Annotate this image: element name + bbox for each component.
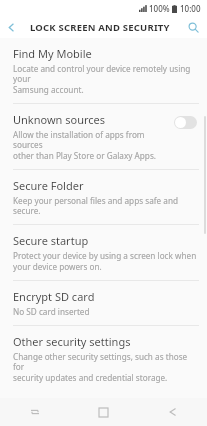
button[interactable]: Recent apps: [0, 398, 69, 426]
staticText: security updates and credential storage.: [13, 372, 168, 383]
button[interactable]: Unknown sources toggle: [174, 116, 197, 129]
staticText: Allow the installation of apps from sour…: [13, 129, 174, 150]
staticText: Encrypt SD card: [13, 289, 95, 304]
staticText: other than Play Store or Galaxy Apps.: [13, 150, 157, 161]
staticText: Protect your device by using a screen lo…: [13, 250, 197, 261]
button[interactable]: Secure Folder: [0, 170, 207, 224]
staticText: your device powers on.: [13, 261, 102, 272]
staticText: Keep your personal files and apps safe a…: [13, 195, 197, 216]
button[interactable]: Back: [138, 398, 207, 426]
staticText: No SD card inserted: [13, 306, 90, 317]
staticText: 10:00: [180, 3, 201, 14]
staticText: LOCK SCREEN AND SECURITY: [30, 21, 170, 34]
button[interactable]: Search: [183, 17, 203, 37]
staticText: Find My Mobile: [13, 46, 92, 61]
staticText: Locate and control your device remotely …: [13, 63, 197, 84]
staticText: Other security settings: [13, 334, 131, 349]
button[interactable]: Find My Mobile: [0, 38, 207, 103]
staticText: Secure startup: [13, 233, 89, 248]
button[interactable]: Other security settings: [0, 326, 207, 391]
button[interactable]: Unknown sources: [0, 104, 207, 169]
staticText: Samsung account.: [13, 84, 84, 95]
staticText: 100%: [149, 3, 170, 14]
staticText: Change other security settings, such as …: [13, 351, 197, 372]
button[interactable]: Secure startup: [0, 225, 207, 280]
staticText: Secure Folder: [13, 178, 84, 193]
staticText: Unknown sources: [13, 112, 106, 127]
button[interactable]: Home: [69, 398, 138, 426]
button[interactable]: Back: [0, 16, 22, 38]
button[interactable]: Encrypt SD card: [0, 281, 207, 325]
